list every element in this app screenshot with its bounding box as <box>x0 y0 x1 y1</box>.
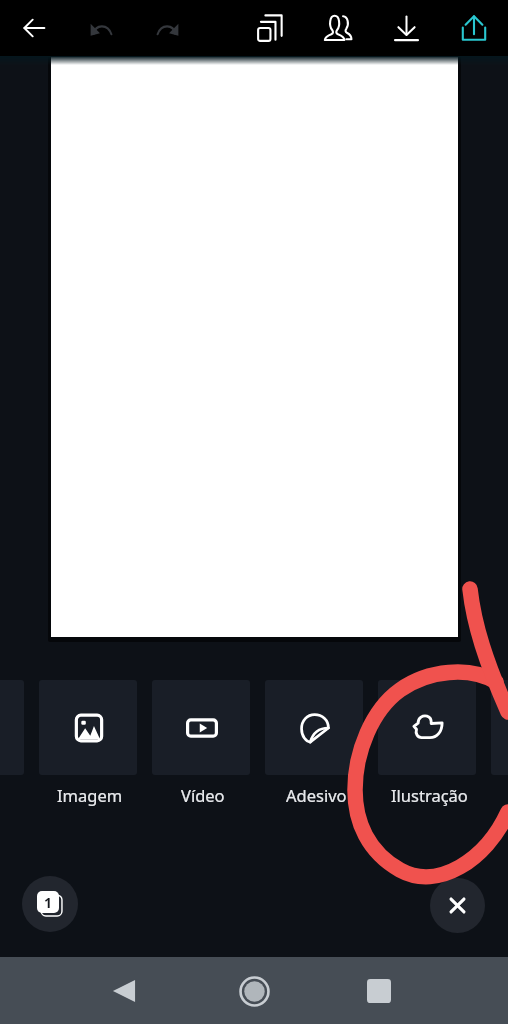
button[interactable]: Ilustração <box>378 680 476 805</box>
button[interactable]: Pages <box>22 876 78 932</box>
button[interactable]: Vídeo <box>152 680 250 805</box>
staticText: 1 <box>44 893 53 912</box>
button[interactable]: Texto <box>491 680 508 805</box>
button[interactable]: Collaborate <box>316 6 360 50</box>
staticText: Adesivo <box>286 784 347 806</box>
button[interactable] <box>0 680 24 805</box>
button[interactable]: Imagem <box>39 680 137 805</box>
staticText: Imagem <box>57 784 123 806</box>
button[interactable]: Download <box>384 6 428 50</box>
staticText: Vídeo <box>181 784 225 806</box>
button[interactable]: Pages <box>249 6 293 50</box>
button[interactable]: Home <box>230 967 278 1015</box>
button[interactable]: Share <box>452 6 496 50</box>
button[interactable]: Adesivo <box>265 680 363 805</box>
staticText: Ilustração <box>391 784 468 806</box>
button[interactable]: Undo <box>79 6 123 50</box>
button[interactable]: Back <box>100 967 148 1015</box>
button[interactable]: Redo <box>146 6 190 50</box>
button[interactable]: Recents <box>355 967 403 1015</box>
button[interactable]: Close <box>430 878 485 933</box>
button[interactable]: Back <box>12 6 56 50</box>
